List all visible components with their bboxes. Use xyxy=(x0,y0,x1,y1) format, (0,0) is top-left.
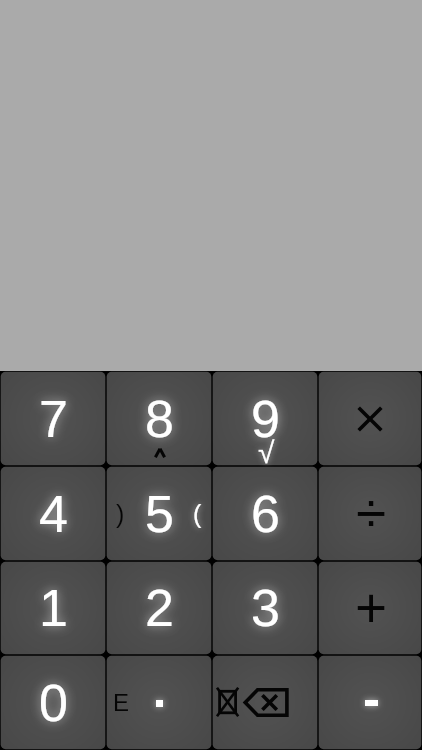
button[interactable]: five, parentheses xyxy=(106,466,212,561)
staticText: 6 xyxy=(251,485,280,543)
staticText: √ xyxy=(258,436,275,470)
button[interactable]: backspace, clear xyxy=(212,655,318,750)
staticText: 3 xyxy=(251,579,280,637)
staticText: 1 xyxy=(39,579,68,637)
staticText: 9 xyxy=(251,390,280,448)
staticText: 6 xyxy=(251,485,280,543)
staticText: 7 xyxy=(39,390,68,448)
button[interactable]: four xyxy=(0,466,106,561)
staticText: ) xyxy=(116,500,125,528)
staticText: 4 xyxy=(39,485,68,543)
button[interactable]: decimal point, exponent xyxy=(106,655,212,750)
button[interactable]: one xyxy=(0,561,106,655)
button[interactable]: three xyxy=(212,561,318,655)
button[interactable]: nine, square root xyxy=(212,371,318,466)
staticText: 2 xyxy=(145,579,174,637)
button[interactable]: minus xyxy=(318,655,422,750)
button[interactable]: eight, power xyxy=(106,371,212,466)
staticText: + xyxy=(355,577,388,638)
staticText: 4 xyxy=(39,485,68,543)
staticText: 5 xyxy=(145,485,174,543)
button[interactable]: six xyxy=(212,466,318,561)
button[interactable]: seven xyxy=(0,371,106,466)
button[interactable]: divide xyxy=(318,466,422,561)
staticText: ( xyxy=(193,500,202,528)
button[interactable]: two xyxy=(106,561,212,655)
staticText: 7 xyxy=(39,390,68,448)
staticText: 8 xyxy=(145,390,174,448)
staticText: 0 xyxy=(39,674,68,732)
staticText: 5 xyxy=(145,485,174,543)
staticText: 1 xyxy=(39,579,68,637)
staticText: 3 xyxy=(251,579,280,637)
staticText: 9 xyxy=(251,390,280,448)
staticText: 2 xyxy=(145,579,174,637)
staticText: √ xyxy=(258,436,275,470)
staticText: E xyxy=(113,689,130,716)
button[interactable]: multiply xyxy=(318,371,422,466)
staticText: 8 xyxy=(145,390,174,448)
staticText: 0 xyxy=(39,674,68,732)
staticText: ÷ xyxy=(356,482,387,543)
button[interactable]: zero xyxy=(0,655,106,750)
staticText: ( xyxy=(193,500,202,528)
button[interactable]: plus xyxy=(318,561,422,655)
